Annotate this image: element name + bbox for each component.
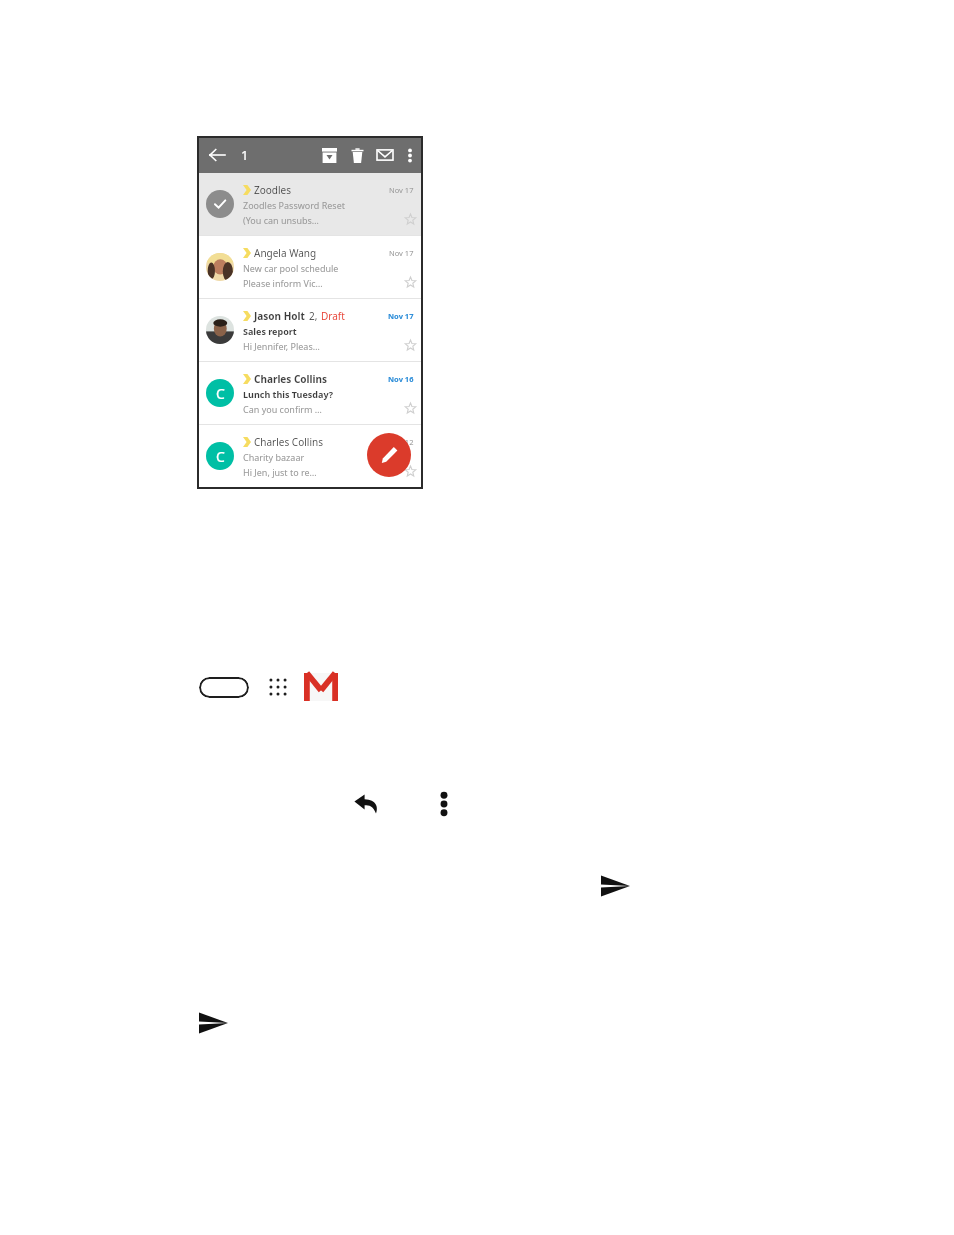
staticText: Nov 17	[389, 248, 414, 258]
staticText: Sales report	[243, 325, 297, 337]
button[interactable]: Star	[404, 402, 417, 415]
staticText: Charity bazaar	[243, 451, 305, 463]
button[interactable]: Zoodles	[197, 173, 423, 235]
staticText: New car pool schedule	[243, 262, 339, 274]
staticText: C	[216, 384, 225, 403]
button[interactable]: Delete	[343, 141, 371, 169]
button[interactable]: Archive	[315, 141, 343, 169]
staticText: Nov 12	[389, 437, 414, 447]
staticText: Nov 16	[388, 374, 414, 384]
staticText: Nov 17	[389, 185, 414, 195]
button[interactable]: Gmail	[304, 673, 338, 701]
button[interactable]: Apps	[266, 675, 290, 699]
staticText: Jason Holt	[254, 309, 305, 323]
button[interactable]: C	[197, 425, 423, 487]
button[interactable]: Send	[199, 1011, 228, 1035]
staticText: Lunch this Tuesday?	[243, 388, 334, 400]
button[interactable]: Compose	[367, 433, 411, 477]
button[interactable]: Angela Wang	[197, 236, 423, 298]
button[interactable]: Send	[601, 874, 630, 898]
staticText: Hi Jen, just to remind you tha…	[243, 466, 323, 478]
staticText: Angela Wang	[254, 246, 317, 260]
button[interactable]: Reply	[352, 789, 382, 819]
staticText: 2,	[309, 309, 318, 323]
button[interactable]: Jason Holt	[197, 299, 423, 361]
button[interactable]: More options	[435, 789, 453, 819]
staticText: Nov 17	[388, 311, 414, 321]
staticText: Draft	[321, 309, 345, 323]
button[interactable]: Back	[203, 141, 231, 169]
button[interactable]: Star	[404, 276, 417, 289]
button[interactable]: Pill	[199, 677, 249, 698]
button[interactable]: More options	[399, 144, 421, 166]
staticText: 1	[241, 146, 249, 164]
button[interactable]: Star	[404, 339, 417, 352]
button[interactable]: Star	[404, 213, 417, 226]
staticText: Please inform Vic of your prefer…	[243, 277, 323, 289]
button[interactable]: Star	[404, 465, 417, 478]
staticText: Charles Collins	[254, 372, 328, 386]
staticText: Can you confirm now if you're fr…	[243, 403, 323, 415]
staticText: Hi Jennifer, Please forward to m…	[243, 340, 323, 352]
staticText: Zoodles Password Reset	[243, 199, 345, 211]
button[interactable]: C	[197, 362, 423, 424]
staticText: Charles Collins	[254, 435, 323, 449]
staticText: C	[216, 447, 225, 466]
staticText: (You can unsubscribe immediat…	[243, 214, 323, 226]
staticText: Zoodles	[254, 183, 291, 197]
button[interactable]: Mark unread	[371, 141, 399, 169]
